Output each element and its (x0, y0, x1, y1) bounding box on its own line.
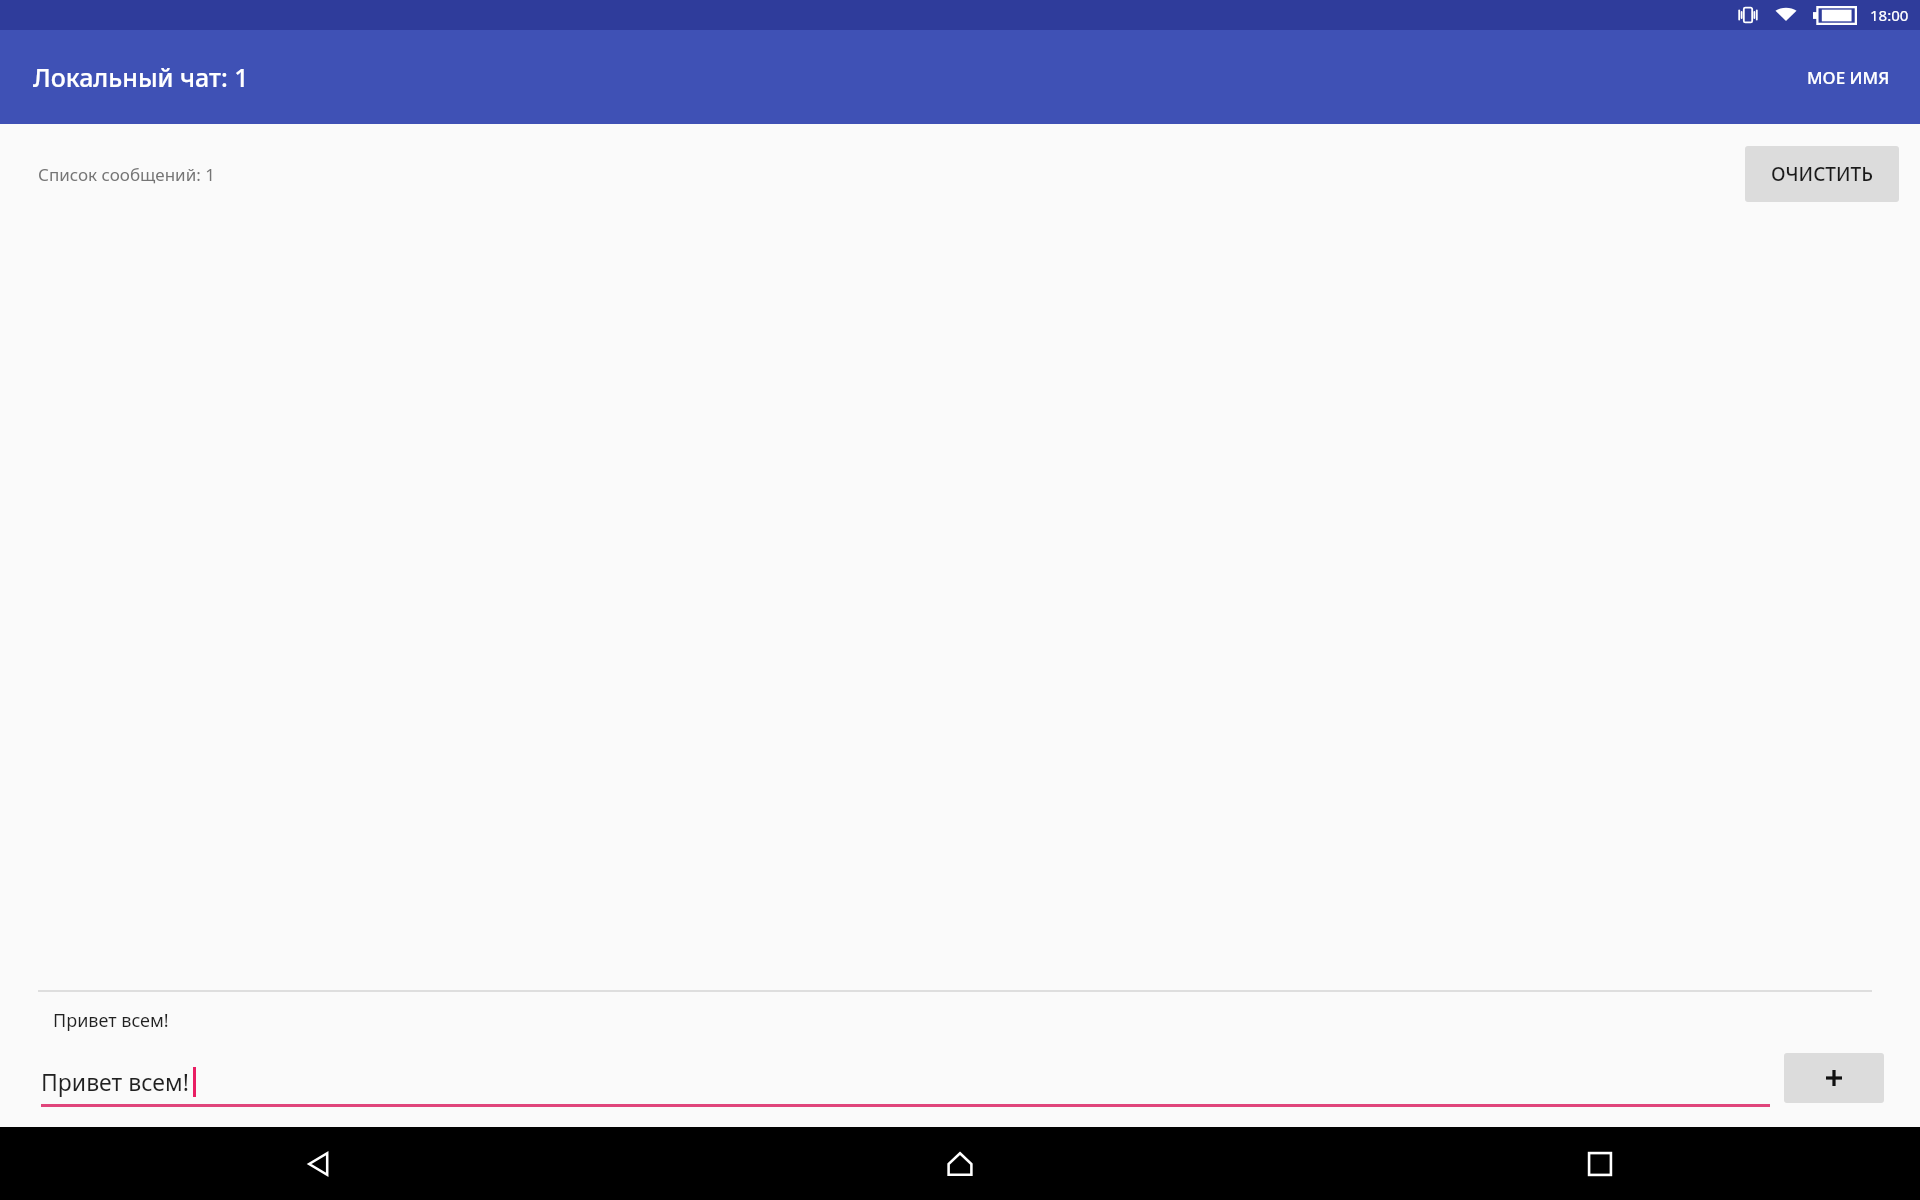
button[interactable]: Назад (0, 1127, 640, 1200)
button[interactable]: Недавние приложения (1280, 1127, 1920, 1200)
staticText: МОЕ ИМЯ (1807, 66, 1890, 89)
staticText: Привет всем! (41, 1066, 189, 1097)
button[interactable]: МОЕ ИМЯ (1789, 52, 1908, 103)
staticText: 18:00 (1870, 5, 1909, 25)
staticText: Локальный чат: 1 (33, 60, 249, 94)
button[interactable]: ОЧИСТИТЬ (1745, 146, 1899, 202)
button[interactable]: Добавить сообщение (1784, 1053, 1884, 1103)
button[interactable]: Главный экран (640, 1127, 1280, 1200)
staticText: Привет всем! (53, 1008, 169, 1033)
staticText: Список сообщений: 1 (38, 163, 215, 186)
button[interactable]: Привет всем! (41, 1066, 1770, 1107)
staticText: ОЧИСТИТЬ (1771, 161, 1873, 187)
